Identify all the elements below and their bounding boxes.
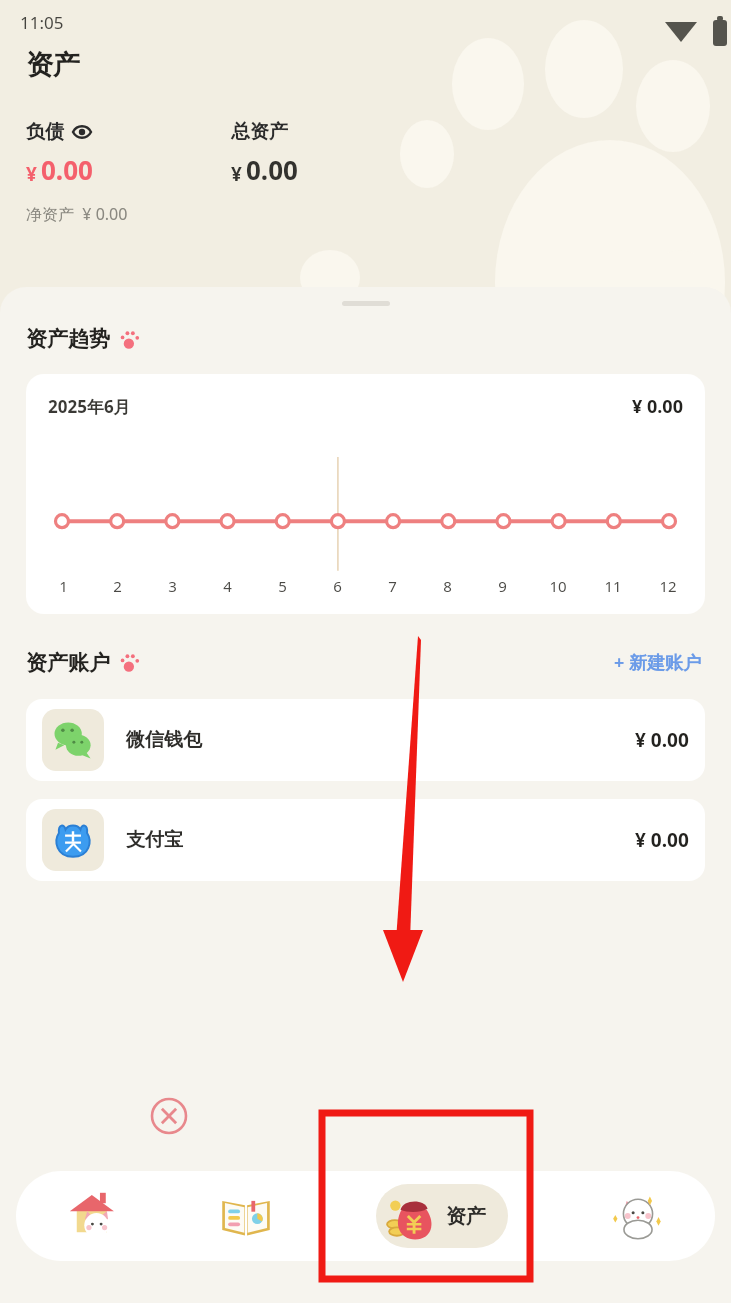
staticText: 2025年6月 <box>48 395 131 418</box>
staticText: 资产趋势 <box>26 326 110 352</box>
staticText: 总资产 <box>231 120 288 144</box>
staticText: 0.00 <box>246 152 298 187</box>
staticText: 微信钱包 <box>126 728 202 752</box>
staticText: ¥ 0.00 <box>635 727 689 753</box>
staticText: + 新建账户 <box>614 650 701 675</box>
staticText: ¥ <box>231 161 242 187</box>
staticText: ¥ <box>26 161 37 187</box>
staticText: 1 <box>59 576 68 596</box>
staticText: 4 <box>223 576 232 596</box>
button[interactable]: 账本 <box>169 1171 323 1261</box>
button[interactable]: 支付宝 <box>26 799 705 881</box>
staticText: 5 <box>278 576 287 596</box>
staticText: 12 <box>659 576 677 596</box>
button[interactable]: + 新建账户 <box>610 646 705 679</box>
button[interactable]: 资产 <box>376 1184 508 1248</box>
button[interactable]: 微信钱包 <box>26 699 705 781</box>
button[interactable]: 我的 <box>561 1171 715 1261</box>
staticText: 0.00 <box>41 152 93 187</box>
staticText: 8 <box>443 576 452 596</box>
staticText: 7 <box>388 576 397 596</box>
staticText: 资产账户 <box>26 650 110 676</box>
staticText: 3 <box>168 576 177 596</box>
staticText: 6 <box>333 576 342 596</box>
staticText: 净资产 ¥ 0.00 <box>26 203 128 225</box>
staticText: 2 <box>113 576 122 596</box>
staticText: 10 <box>549 576 567 596</box>
staticText: 负债 <box>26 120 64 144</box>
staticText: 资产 <box>26 48 80 82</box>
button[interactable]: 2025年6月 <box>26 374 705 614</box>
button[interactable]: 首页 <box>16 1171 169 1261</box>
staticText: 11:05 <box>20 11 64 34</box>
staticText: ¥ 0.00 <box>632 394 683 419</box>
staticText: 11 <box>604 576 622 596</box>
staticText: 资产 <box>446 1204 486 1229</box>
staticText: ¥ 0.00 <box>635 827 689 853</box>
button[interactable]: 隐藏金额 <box>71 121 93 143</box>
staticText: 支付宝 <box>126 828 183 852</box>
staticText: 9 <box>498 576 507 596</box>
